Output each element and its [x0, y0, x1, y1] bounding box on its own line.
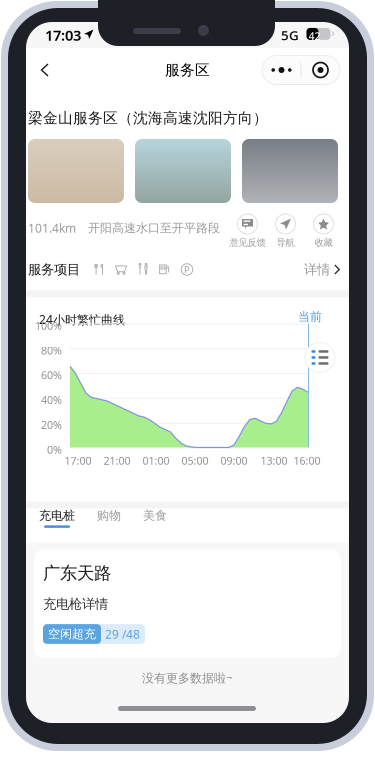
staticText: 服务项目 [28, 261, 80, 278]
staticText: 29 /48 [105, 626, 140, 642]
button[interactable]: 美食 [132, 508, 178, 542]
staticText: 01:00 [142, 453, 169, 468]
staticText: 17:03 [45, 25, 81, 45]
staticText: 42 [308, 29, 320, 43]
button[interactable]: 意见反馈 [229, 214, 266, 248]
staticText: 40% [41, 393, 62, 407]
staticText: 没有更多数据啦~ [142, 670, 233, 686]
button[interactable]: 更多 [262, 55, 340, 84]
staticText: 导航 [276, 237, 294, 248]
button[interactable]: 导航 [267, 214, 304, 248]
staticText: 5G [281, 26, 299, 44]
staticText: 充电枪详情 [43, 596, 108, 612]
staticText: 开阳高速水口至开平路段 [88, 221, 220, 235]
staticText: 空闲超充 [48, 627, 96, 641]
staticText: 100% [35, 318, 62, 333]
staticText: 充电桩 [39, 508, 75, 523]
staticText: 60% [41, 368, 62, 382]
staticText: 24小时繁忙曲线 [39, 311, 125, 327]
staticText: 20% [41, 418, 62, 432]
staticText: 服务区 [165, 61, 210, 79]
staticText: 购物 [97, 508, 121, 523]
staticText: 美食 [143, 508, 167, 523]
staticText: 13:00 [260, 453, 287, 468]
button[interactable]: 列表 [304, 341, 336, 373]
button[interactable]: 返回 [30, 55, 60, 85]
staticText: 101.4km [28, 220, 76, 236]
staticText: 详情 [304, 261, 330, 278]
button[interactable]: 购物 [86, 508, 132, 542]
staticText: 09:00 [220, 453, 247, 468]
staticText: 当前 [298, 309, 322, 324]
staticText: 0% [47, 442, 62, 457]
staticText: 05:00 [181, 453, 208, 468]
staticText: 17:00 [64, 453, 91, 468]
staticText: P [184, 263, 190, 276]
button[interactable]: 充电桩 [28, 508, 86, 542]
staticText: 16:00 [293, 453, 320, 468]
staticText: 广东天路 [43, 562, 111, 584]
button[interactable]: 详情 [304, 261, 349, 278]
staticText: 21:00 [103, 453, 130, 468]
button[interactable]: 收藏 [305, 214, 342, 248]
button[interactable]: 广东天路 [34, 549, 341, 658]
staticText: 80% [41, 343, 62, 357]
staticText: 梁金山服务区（沈海高速沈阳方向） [28, 109, 268, 127]
staticText: 收藏 [314, 237, 332, 248]
staticText: 意见反馈 [229, 237, 265, 248]
